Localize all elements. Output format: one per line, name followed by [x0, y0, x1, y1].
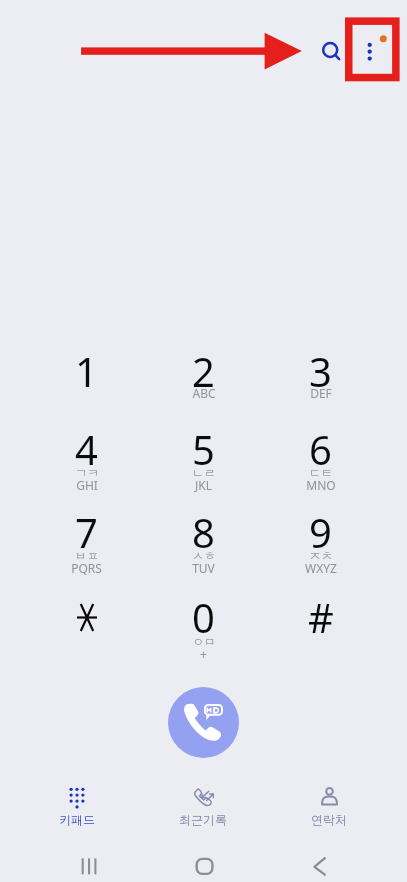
button[interactable]: 4 [28, 410, 145, 494]
staticText: 7 [75, 505, 98, 559]
button[interactable]: 7 [28, 493, 145, 577]
staticText: 0 [192, 590, 215, 644]
staticText: ABC [192, 385, 216, 401]
staticText: 9 [309, 505, 332, 559]
staticText: ㄷㅌ [309, 465, 333, 480]
staticText: TUV [192, 560, 215, 576]
button[interactable]: More options [348, 26, 396, 74]
staticText: ㄱㅋ [75, 465, 99, 480]
staticText: JKL [195, 477, 212, 493]
staticText: ㅂㅍ [75, 548, 99, 563]
button[interactable] [28, 578, 145, 662]
button[interactable]: 9 [262, 493, 379, 577]
staticText: 4 [75, 422, 98, 476]
staticText: 1 [75, 344, 98, 398]
staticText: 5 [192, 422, 215, 476]
staticText: 연락처 [311, 812, 347, 827]
button[interactable]: Call [168, 687, 239, 758]
staticText: 8 [192, 505, 215, 559]
button[interactable]: Recents [64, 845, 114, 882]
button[interactable]: 2 [145, 332, 262, 416]
staticText: WXYZ [305, 560, 337, 576]
staticText: # [308, 590, 334, 644]
staticText: 2 [192, 344, 215, 398]
staticText: ㅇㅁ [192, 634, 216, 649]
button[interactable]: 3 [262, 332, 379, 416]
button[interactable]: 키패드 [22, 778, 132, 830]
staticText: PQRS [71, 560, 102, 576]
button[interactable]: Search [306, 26, 354, 74]
button[interactable]: 1 [28, 332, 145, 416]
button[interactable]: Home [180, 845, 230, 882]
button[interactable]: # [262, 578, 379, 662]
staticText: GHI [76, 477, 98, 493]
button[interactable]: 0 [145, 578, 262, 662]
button[interactable]: 8 [145, 493, 262, 577]
staticText: ㅅㅎ [192, 548, 216, 563]
button[interactable]: 6 [262, 410, 379, 494]
staticText: 최근기록 [179, 812, 227, 827]
button[interactable]: 최근기록 [148, 778, 258, 830]
staticText: ㄴㄹ [192, 465, 216, 480]
staticText: 키패드 [59, 812, 95, 827]
staticText: 6 [309, 422, 332, 476]
button[interactable]: Back [296, 845, 346, 882]
staticText: MNO [306, 477, 336, 493]
button[interactable]: 연락처 [274, 778, 384, 830]
staticText: ㅈㅊ [309, 548, 333, 563]
button[interactable]: 5 [145, 410, 262, 494]
staticText: 3 [309, 344, 332, 398]
staticText: DEF [310, 385, 332, 401]
staticText: + [200, 646, 207, 662]
